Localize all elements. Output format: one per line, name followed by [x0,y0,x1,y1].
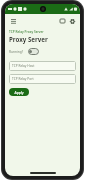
staticText: TCP Relay Proxy Server [9,30,44,34]
staticText: Running? [9,50,24,54]
staticText: TCP Relay Port [12,77,34,81]
button[interactable]: Menu [8,16,18,26]
staticText: Apply [14,90,24,95]
button[interactable]: Apply [9,88,29,96]
button[interactable]: TCP Relay Host [9,61,76,71]
button[interactable]: Settings [67,16,77,26]
staticText: Proxy Server [9,35,48,43]
button[interactable]: TCP Relay Port [9,74,76,84]
button[interactable]: Devices [57,16,67,26]
button[interactable]: Running toggle [28,48,39,55]
staticText: TCP Relay Host [12,64,35,68]
